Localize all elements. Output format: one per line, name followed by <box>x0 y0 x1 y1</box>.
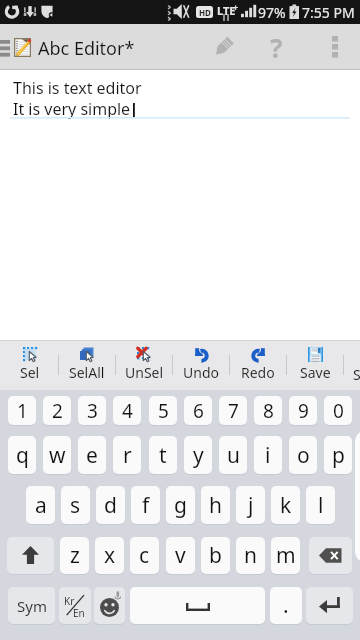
button[interactable]: o <box>289 436 317 474</box>
staticText: h <box>209 491 222 520</box>
button[interactable]: 4 <box>113 396 141 425</box>
staticText: i <box>265 441 271 470</box>
staticText: e <box>86 441 98 470</box>
button[interactable]: 1 <box>8 396 36 425</box>
staticText: m <box>276 541 296 570</box>
button[interactable]: UnSel <box>116 340 172 390</box>
staticText: UnSel <box>125 363 164 382</box>
staticText: 6 <box>193 398 204 424</box>
staticText: S <box>353 365 360 384</box>
button[interactable]: 3 <box>78 396 106 425</box>
staticText: 9 <box>298 398 309 424</box>
button[interactable]: . <box>270 587 302 624</box>
staticText: b <box>209 541 222 570</box>
button[interactable]: 9 <box>289 396 317 425</box>
button[interactable]: Switch language <box>59 587 91 624</box>
button[interactable]: p <box>324 436 352 474</box>
staticText: 7:55 PM <box>302 3 355 22</box>
staticText: x <box>104 541 116 570</box>
button[interactable]: n <box>236 537 265 574</box>
button[interactable]: k <box>271 486 300 524</box>
staticText: f <box>142 491 150 520</box>
button[interactable]: l <box>306 486 335 524</box>
staticText: 0 <box>333 398 344 424</box>
button[interactable]: Backspace <box>309 537 352 574</box>
button[interactable]: e <box>78 436 106 474</box>
button[interactable]: Redo <box>230 340 286 390</box>
staticText: ? <box>270 30 283 65</box>
staticText: 7 <box>228 398 239 424</box>
button[interactable]: Space <box>130 587 265 624</box>
button[interactable]: 8 <box>254 396 282 425</box>
button[interactable]: x <box>95 537 124 574</box>
staticText: t <box>159 441 167 470</box>
staticText: Abc Editor* <box>38 36 135 61</box>
button[interactable]: z <box>60 537 89 574</box>
staticText: It is very simple <box>13 98 131 120</box>
button[interactable]: Sym <box>8 587 55 624</box>
button[interactable]: r <box>113 436 141 474</box>
button[interactable]: S <box>345 340 360 390</box>
staticText: d <box>104 491 117 520</box>
button[interactable]: Help <box>254 24 299 70</box>
staticText: l <box>318 491 324 520</box>
staticText: En <box>73 606 85 620</box>
button[interactable]: u <box>219 436 247 474</box>
button[interactable]: g <box>166 486 195 524</box>
button[interactable]: h <box>201 486 230 524</box>
button[interactable]: 6 <box>184 396 212 425</box>
button[interactable]: m <box>271 537 300 574</box>
staticText: . <box>283 591 289 620</box>
button[interactable]: 7 <box>219 396 247 425</box>
button[interactable]: 2 <box>43 396 71 425</box>
staticText: 2 <box>52 398 63 424</box>
staticText: g <box>174 491 187 520</box>
button[interactable]: Emoji and voice input <box>94 587 125 624</box>
staticText: Undo <box>183 363 219 382</box>
button[interactable]: i <box>254 436 282 474</box>
staticText: u <box>227 441 240 470</box>
button[interactable]: Edit <box>201 24 246 70</box>
staticText: q <box>16 441 29 470</box>
button[interactable]: c <box>130 537 159 574</box>
button[interactable]: v <box>166 537 195 574</box>
staticText: HD <box>199 7 211 18</box>
button[interactable]: 0 <box>324 396 352 425</box>
button[interactable]: w <box>43 436 71 474</box>
staticText: Save <box>300 363 331 382</box>
staticText: 3 <box>87 398 98 424</box>
button[interactable]: b <box>201 537 230 574</box>
staticText: o <box>297 441 310 470</box>
staticText: v <box>175 541 186 570</box>
staticText: k <box>280 491 292 520</box>
button[interactable]: y <box>184 436 212 474</box>
button[interactable]: 5 <box>149 396 177 425</box>
staticText: s <box>70 491 81 520</box>
button[interactable]: Enter <box>306 587 353 624</box>
button[interactable]: Sel <box>2 340 58 390</box>
button[interactable]: More options <box>312 24 358 70</box>
button[interactable]: d <box>96 486 125 524</box>
staticText: c <box>139 541 150 570</box>
staticText: p <box>332 441 345 470</box>
staticText: Kr <box>64 594 75 608</box>
button[interactable]: SelAll <box>59 340 115 390</box>
button[interactable]: f <box>131 486 160 524</box>
button[interactable]: Shift <box>7 537 54 574</box>
button[interactable]: a <box>26 486 55 524</box>
staticText: Redo <box>241 363 275 382</box>
staticText: y <box>193 441 204 470</box>
staticText: 1 <box>17 398 28 424</box>
staticText: 8 <box>263 398 274 424</box>
button[interactable]: q <box>8 436 36 474</box>
button[interactable]: Navigation menu <box>0 24 14 70</box>
button[interactable]: j <box>236 486 265 524</box>
button[interactable]: Undo <box>173 340 229 390</box>
button[interactable]: t <box>149 436 177 474</box>
button[interactable]: s <box>61 486 90 524</box>
staticText: LTE <box>217 3 236 18</box>
staticText: 5 <box>158 398 169 424</box>
staticText: j <box>248 491 254 520</box>
button[interactable]: Save <box>287 340 343 390</box>
staticText: Sel <box>20 363 40 382</box>
